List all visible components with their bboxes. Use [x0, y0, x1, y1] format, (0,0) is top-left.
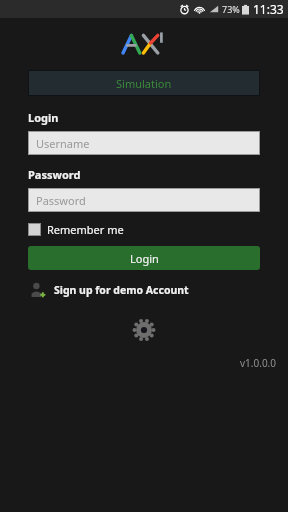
staticText: 11:33 [253, 1, 284, 17]
staticText: Password [36, 193, 86, 208]
staticText: Remember me [47, 222, 124, 237]
button[interactable]: Simulation [28, 70, 260, 96]
staticText: 73% [222, 3, 240, 15]
button[interactable]: Settings [132, 318, 156, 342]
button[interactable]: Username [28, 131, 260, 155]
button[interactable]: Login [28, 246, 260, 270]
button[interactable]: Remember me [28, 220, 124, 239]
staticText: Simulation [116, 76, 172, 91]
staticText: Login [28, 110, 59, 125]
staticText: Username [36, 136, 90, 151]
staticText: Password [28, 167, 81, 182]
staticText: Login [130, 251, 159, 266]
other: Sign up for demo Account [28, 280, 48, 300]
staticText: Sign up for demo Account [54, 283, 189, 297]
staticText: v1.0.0.0 [240, 356, 276, 370]
button[interactable]: Sign up for demo Account [28, 280, 189, 300]
button[interactable]: Password [28, 188, 260, 212]
